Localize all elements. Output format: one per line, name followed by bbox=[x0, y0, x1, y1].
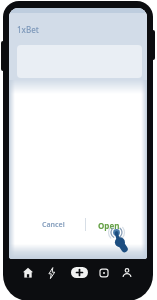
button[interactable]: Open bbox=[93, 217, 125, 233]
staticText: Cancel bbox=[42, 220, 65, 230]
button[interactable] bbox=[119, 265, 135, 281]
staticText: Open bbox=[98, 220, 120, 231]
button[interactable] bbox=[71, 267, 88, 278]
button[interactable] bbox=[44, 265, 60, 281]
button[interactable]: Cancel bbox=[34, 217, 72, 233]
button[interactable] bbox=[20, 265, 36, 281]
button[interactable] bbox=[96, 265, 112, 281]
staticText: 1xBet bbox=[17, 24, 39, 35]
